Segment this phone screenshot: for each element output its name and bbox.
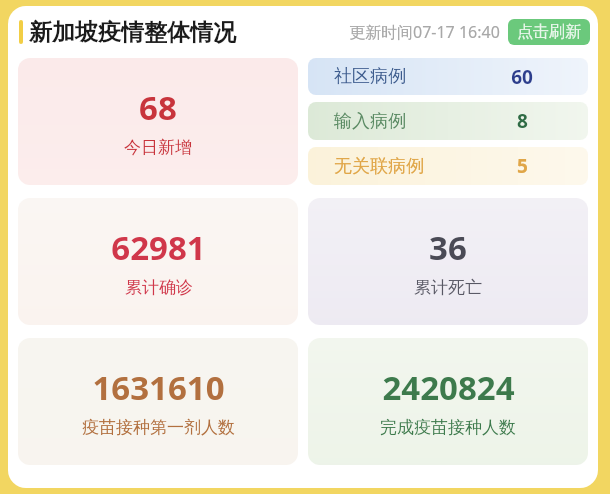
staticText: 68 bbox=[139, 85, 177, 130]
staticText: 5 bbox=[517, 153, 528, 179]
staticText: 1631610 bbox=[92, 365, 225, 410]
button[interactable]: 无关联病例 bbox=[308, 147, 588, 185]
staticText: 62981 bbox=[111, 225, 206, 270]
staticText: 新加坡疫情整体情况 bbox=[29, 18, 236, 47]
staticText: 2420824 bbox=[382, 365, 515, 410]
staticText: 更新时间07-17 16:40 bbox=[349, 21, 500, 43]
button[interactable]: 1631610 bbox=[18, 338, 298, 465]
button[interactable]: 62981 bbox=[18, 198, 298, 325]
staticText: 疫苗接种第一剂人数 bbox=[82, 417, 235, 438]
staticText: 36 bbox=[429, 225, 467, 270]
button[interactable]: 点击刷新 bbox=[508, 19, 590, 45]
button[interactable]: 社区病例 bbox=[308, 58, 588, 95]
staticText: 累计死亡 bbox=[414, 277, 482, 298]
button[interactable]: 输入病例 bbox=[308, 102, 588, 140]
staticText: 社区病例 bbox=[334, 65, 406, 88]
button[interactable]: 2420824 bbox=[308, 338, 588, 465]
button[interactable]: 68 bbox=[18, 58, 298, 185]
staticText: 完成疫苗接种人数 bbox=[380, 417, 516, 438]
staticText: 今日新增 bbox=[124, 137, 192, 158]
staticText: 输入病例 bbox=[334, 110, 406, 133]
staticText: 累计确诊 bbox=[125, 277, 193, 298]
staticText: 60 bbox=[511, 64, 533, 90]
button[interactable]: 36 bbox=[308, 198, 588, 325]
staticText: 点击刷新 bbox=[517, 22, 581, 42]
staticText: 8 bbox=[517, 108, 528, 134]
staticText: 无关联病例 bbox=[334, 155, 424, 178]
